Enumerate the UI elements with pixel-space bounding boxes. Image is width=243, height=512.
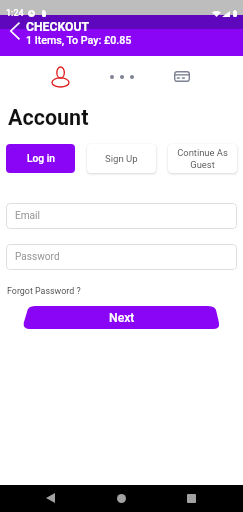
button[interactable]: Account step [52,67,69,87]
staticText: 1 Items, To Pay: £0.85 [26,34,132,47]
staticText: Next [109,311,135,325]
staticText: Sign Up [105,153,138,164]
staticText: Continue As Guest [174,147,231,170]
button[interactable]: Recents [179,486,203,510]
button[interactable]: Payment step [174,71,190,82]
button[interactable]: Sign Up [87,144,156,173]
button[interactable]: Password [6,244,237,270]
staticText: Log in [27,153,55,165]
button[interactable]: Back [38,486,62,510]
button[interactable]: Home [109,486,133,510]
button[interactable]: Continue As Guest [168,144,237,173]
staticText: 1:24 [6,8,24,19]
button[interactable]: Log in [6,144,75,173]
button[interactable]: Forgot Password ? [7,286,81,296]
staticText: Account [8,105,89,130]
staticText: CHECKOUT [26,20,89,34]
staticText: Password [15,251,60,263]
staticText: Email [15,210,40,222]
button[interactable]: Back [10,22,20,40]
button[interactable]: Email [6,203,237,229]
